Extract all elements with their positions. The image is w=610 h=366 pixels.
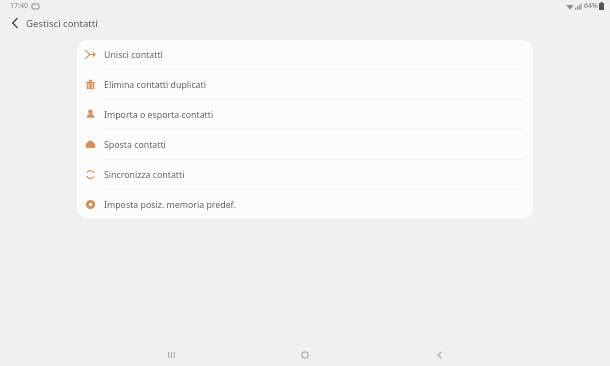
button[interactable]: Recent apps: [147, 337, 195, 366]
button[interactable]: Elimina contatti duplicati: [77, 70, 533, 99]
button[interactable]: Back: [415, 337, 463, 366]
staticText: 64%: [584, 1, 598, 11]
staticText: Unisci contatti: [104, 49, 163, 61]
button[interactable]: Home: [281, 337, 329, 366]
button[interactable]: Sposta contatti: [77, 130, 533, 159]
button[interactable]: Imposta posiz. memoria predef.: [77, 190, 533, 219]
staticText: Gestisci contatti: [26, 17, 98, 30]
staticText: Elimina contatti duplicati: [104, 79, 206, 91]
button[interactable]: Unisci contatti: [77, 40, 533, 69]
button[interactable]: Importa o esporta contatti: [77, 100, 533, 129]
button[interactable]: Sincronizza contatti: [77, 160, 533, 189]
button[interactable]: Back: [2, 10, 28, 36]
staticText: 17:40: [10, 1, 28, 11]
staticText: Sposta contatti: [104, 139, 166, 151]
staticText: Sincronizza contatti: [104, 169, 185, 181]
staticText: Importa o esporta contatti: [104, 109, 214, 121]
staticText: Imposta posiz. memoria predef.: [104, 199, 236, 211]
